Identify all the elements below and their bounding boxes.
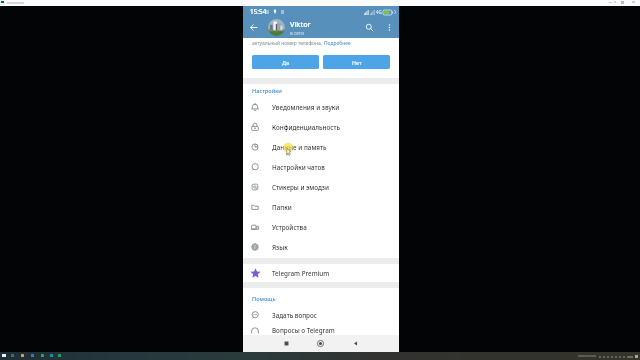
staticText: в сети [290, 30, 305, 37]
button[interactable]: Язык [243, 237, 399, 257]
button[interactable]: Стикеры и эмодзи [243, 177, 399, 197]
staticText: Подробнее [324, 40, 351, 47]
button[interactable]: Recent apps [269, 335, 303, 352]
button[interactable]: Конфиденциальность [243, 117, 399, 137]
button[interactable]: Да [252, 55, 319, 69]
button[interactable]: Папки [243, 197, 399, 217]
staticText: актуальный номер телефона. [252, 40, 324, 47]
staticText: Задать вопрос [272, 311, 317, 320]
button[interactable]: Данные и память [243, 137, 399, 157]
staticText: Устройства [272, 223, 307, 232]
button[interactable]: Настройки чатов [243, 157, 399, 177]
button[interactable]: Back [243, 17, 263, 38]
staticText: Папки [272, 203, 292, 212]
button[interactable]: Нет [323, 55, 390, 69]
staticText: 4G [376, 9, 382, 15]
button[interactable]: More options [381, 17, 397, 38]
staticText: Настройки [252, 87, 282, 95]
staticText: Вопросы о Telegram [272, 326, 335, 335]
staticText: Стикеры и эмодзи [272, 183, 329, 192]
button[interactable]: Уведомления и звуки [243, 97, 399, 117]
button[interactable]: Устройства [243, 217, 399, 237]
staticText: Нет [352, 59, 362, 66]
staticText: Да [282, 59, 290, 66]
staticText: Telegram Premium [272, 269, 330, 278]
button[interactable]: Вопросы о Telegram [243, 325, 399, 335]
staticText: 15:54 [250, 7, 267, 16]
button[interactable]: Telegram Premium [243, 264, 399, 282]
button[interactable]: Search [359, 17, 379, 38]
staticText: Данные и память [272, 143, 327, 152]
staticText: Конфиденциальность [272, 123, 341, 132]
button[interactable]: Profile photo [268, 19, 285, 36]
button[interactable]: Back [338, 335, 373, 352]
staticText: Viktor [290, 19, 311, 29]
button[interactable]: Home [303, 335, 338, 352]
button[interactable]: Задать вопрос [243, 305, 399, 325]
staticText: Уведомления и звуки [272, 103, 340, 112]
staticText: Язык [272, 243, 288, 252]
staticText: Настройки чатов [272, 163, 325, 172]
staticText: Помощь [252, 295, 276, 303]
